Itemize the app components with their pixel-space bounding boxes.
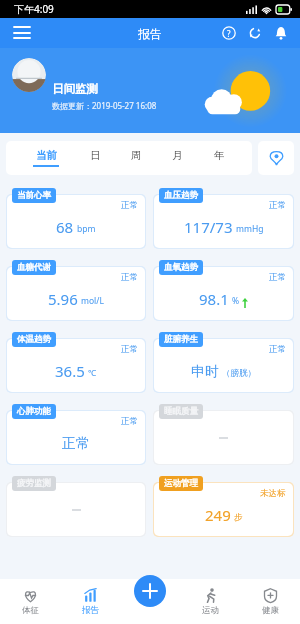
button[interactable]: Help xyxy=(216,20,242,46)
button[interactable]: 当前 xyxy=(33,149,59,167)
button[interactable]: 疲劳监测 xyxy=(6,476,146,537)
button[interactable]: 未达标 xyxy=(153,476,294,537)
staticText: 报告 xyxy=(82,605,99,616)
button[interactable]: 月 xyxy=(172,149,183,167)
button[interactable]: Menu xyxy=(6,18,38,48)
staticText: 运动 xyxy=(202,605,219,616)
button[interactable]: 正常 xyxy=(6,260,146,321)
button[interactable]: Notifications xyxy=(268,20,294,46)
staticText: 68 xyxy=(56,217,74,237)
button[interactable]: 年 xyxy=(214,149,225,167)
button[interactable]: Profile xyxy=(12,58,46,92)
staticText: 正常 xyxy=(269,344,286,355)
staticText: 未达标 xyxy=(260,488,286,499)
staticText: 健康 xyxy=(262,605,279,616)
staticText: 血氧趋势 xyxy=(164,262,198,273)
staticText: 血糖代谢 xyxy=(17,262,51,273)
button[interactable]: 周 xyxy=(131,149,142,167)
staticText: 运动管理 xyxy=(164,478,198,489)
button[interactable]: 正常 xyxy=(6,332,146,393)
button[interactable]: Location xyxy=(258,141,294,175)
staticText: 日 xyxy=(90,149,101,162)
button[interactable]: 睡眠质量 xyxy=(153,404,294,465)
staticText: mol/L xyxy=(81,295,104,307)
staticText: bpm xyxy=(77,223,96,235)
staticText: ? xyxy=(227,28,231,39)
staticText: 血压趋势 xyxy=(164,190,198,201)
button[interactable]: 体征 xyxy=(0,579,60,624)
staticText: 脏腑养生 xyxy=(164,334,198,345)
staticText: 体温趋势 xyxy=(17,334,51,345)
staticText: 申时 xyxy=(191,363,219,381)
staticText: ℃ xyxy=(88,367,97,379)
staticText: 正常 xyxy=(121,344,138,355)
staticText: 249 xyxy=(205,505,231,525)
staticText: 正常 xyxy=(121,416,138,427)
staticText: 报告 xyxy=(138,26,162,41)
staticText: 疲劳监测 xyxy=(17,478,51,489)
staticText: 当前心率 xyxy=(17,190,51,201)
button[interactable]: Refresh xyxy=(242,20,268,46)
staticText: 正常 xyxy=(121,200,138,211)
staticText: 月 xyxy=(172,149,183,162)
button[interactable]: 正常 xyxy=(153,332,294,393)
staticText: 正常 xyxy=(62,435,90,453)
staticText: （膀胱） xyxy=(222,368,256,379)
staticText: 体征 xyxy=(22,605,39,616)
staticText: 步 xyxy=(234,512,243,523)
staticText: 5.96 xyxy=(48,289,78,309)
staticText: 正常 xyxy=(269,272,286,283)
staticText: 下午4:09 xyxy=(14,2,54,16)
button[interactable]: 日 xyxy=(90,149,101,167)
staticText: 正常 xyxy=(269,200,286,211)
button[interactable]: Add xyxy=(134,575,166,607)
staticText: mmHg xyxy=(236,223,264,235)
staticText: 正常 xyxy=(121,272,138,283)
staticText: % xyxy=(232,295,240,307)
staticText: 36.5 xyxy=(55,361,85,381)
button[interactable]: 正常 xyxy=(153,188,294,249)
staticText: 98.1 xyxy=(199,289,229,309)
button[interactable]: 正常 xyxy=(6,188,146,249)
button[interactable]: 运动 xyxy=(180,579,240,624)
staticText: 数据更新：2019-05-27 16:08 xyxy=(52,100,157,111)
staticText: 周 xyxy=(131,149,142,162)
button[interactable]: 健康 xyxy=(240,579,300,624)
button[interactable]: 正常 xyxy=(6,404,146,465)
staticText: 心肺功能 xyxy=(17,406,51,417)
staticText: 睡眠质量 xyxy=(164,406,198,417)
staticText: 年 xyxy=(214,149,225,162)
button[interactable]: 报告 xyxy=(60,579,120,624)
button[interactable]: 正常 xyxy=(153,260,294,321)
staticText: 117/73 xyxy=(184,217,233,237)
staticText: 当前 xyxy=(36,149,57,162)
staticText: 日间监测 xyxy=(52,82,98,96)
